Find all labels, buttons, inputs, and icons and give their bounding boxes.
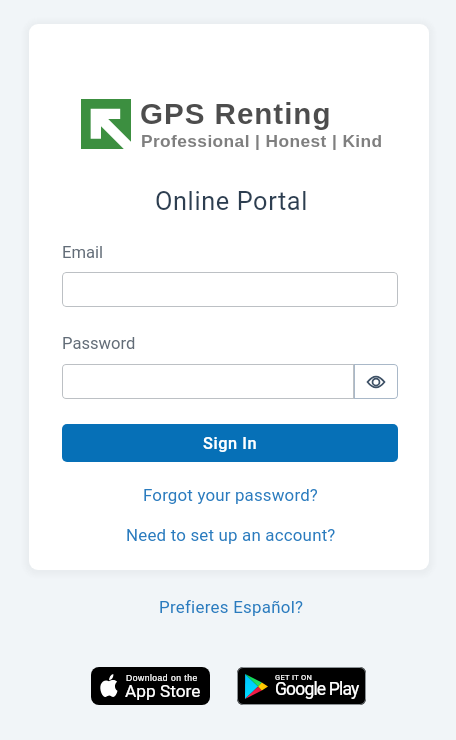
staticText: Password bbox=[62, 334, 136, 353]
staticText: Forgot your password? bbox=[143, 485, 318, 505]
button[interactable]: Need to set up an account? bbox=[116, 519, 346, 551]
button[interactable]: Sign In bbox=[62, 424, 398, 462]
staticText: Google Play bbox=[275, 679, 359, 700]
staticText: Online Portal bbox=[155, 187, 308, 217]
button[interactable]: Download on the App Store bbox=[91, 667, 210, 705]
staticText: Download on the bbox=[126, 673, 198, 683]
staticText: Professional | Honest | Kind bbox=[141, 131, 383, 150]
staticText: Need to set up an account? bbox=[126, 525, 336, 545]
staticText: Prefieres Español? bbox=[159, 597, 304, 617]
button[interactable]: Get it on Google Play bbox=[237, 667, 366, 705]
button[interactable] bbox=[62, 272, 398, 307]
staticText: GPS Renting bbox=[140, 97, 332, 130]
button[interactable]: Forgot your password? bbox=[133, 479, 328, 511]
button[interactable]: Prefieres Español? bbox=[149, 591, 314, 623]
staticText: GET IT ON bbox=[275, 673, 313, 682]
staticText: Email bbox=[62, 243, 104, 262]
button[interactable]: Show password bbox=[354, 364, 398, 399]
button[interactable] bbox=[62, 364, 354, 399]
staticText: Sign In bbox=[203, 434, 258, 453]
staticText: App Store bbox=[125, 681, 201, 701]
